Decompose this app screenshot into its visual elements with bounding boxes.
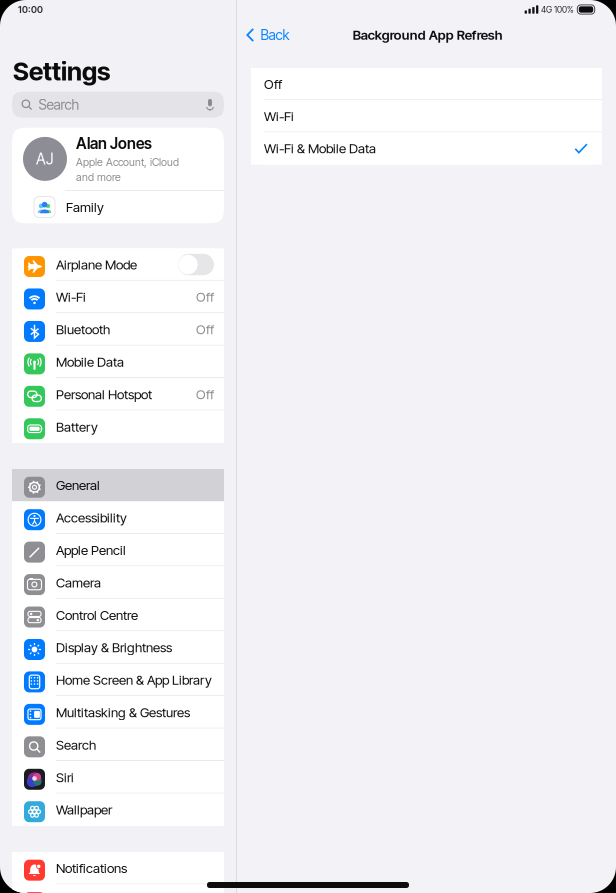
staticText: Apple Pencil [56,542,126,558]
staticText: Back [260,26,289,43]
button[interactable]: Home Screen & App Library [12,664,224,696]
button[interactable]: Wallpaper [12,793,224,826]
staticText: Siri [56,769,74,785]
button[interactable]: Display & Brightness [12,631,224,664]
button[interactable]: Back [237,19,289,50]
button[interactable]: Accessibility [12,501,224,534]
staticText: Notifications [56,860,127,876]
staticText: Wi-Fi & Mobile Data [264,140,376,156]
staticText: Display & Brightness [56,639,172,655]
staticText: Control Centre [56,607,138,623]
button[interactable]: Search [12,729,224,761]
button[interactable]: Wi-Fi & Mobile Data [251,132,602,165]
staticText: Airplane Mode [56,256,137,273]
button[interactable]: General [12,469,224,501]
button[interactable]: Off [251,68,602,100]
staticText: Wi-Fi [56,289,86,305]
staticText: Background App Refresh [353,27,503,43]
button[interactable]: Control Centre [12,599,224,631]
button[interactable]: Camera [12,566,224,599]
button[interactable]: Sounds [12,884,224,893]
staticText: Settings [13,56,110,87]
staticText: Wallpaper [56,802,112,818]
staticText: Mobile Data [56,354,124,370]
staticText: Multitasking & Gestures [56,704,190,720]
staticText: Alan Jones [76,134,152,153]
staticText: Home Screen & App Library [56,672,212,688]
staticText: Family [66,199,104,215]
button[interactable]: Wi-Fi [251,100,602,132]
button[interactable]: Bluetooth [12,313,224,346]
staticText: Apple Account, iCloud [76,156,179,169]
button[interactable]: Wi-Fi [12,281,224,313]
staticText: Off [264,76,282,92]
button[interactable]: Notifications [12,852,224,884]
button[interactable]: Multitasking & Gestures [12,696,224,729]
staticText: Accessibility [56,510,127,526]
staticText: AJ [36,150,54,168]
staticText: Personal Hotspot [56,386,152,402]
button[interactable]: Siri [12,761,224,794]
staticText: Battery [56,419,98,435]
staticText: and more [76,171,121,184]
button[interactable]: Mobile Data [12,346,224,378]
button[interactable]: Airplane Mode [12,248,224,281]
staticText: General [56,477,100,493]
staticText: Bluetooth [56,321,110,337]
staticText: Off [196,386,214,402]
staticText: Off [196,321,214,337]
button[interactable]: Battery [12,411,224,443]
staticText: 4G 100% [541,4,574,15]
staticText: Search [56,737,96,753]
staticText: Camera [56,574,101,591]
button[interactable]: Apple Pencil [12,534,224,566]
button[interactable]: Personal Hotspot [12,378,224,411]
staticText: Search [38,96,79,113]
staticText: Off [196,289,214,305]
staticText: Wi-Fi [264,108,294,124]
staticText: 10:00 [18,4,43,15]
